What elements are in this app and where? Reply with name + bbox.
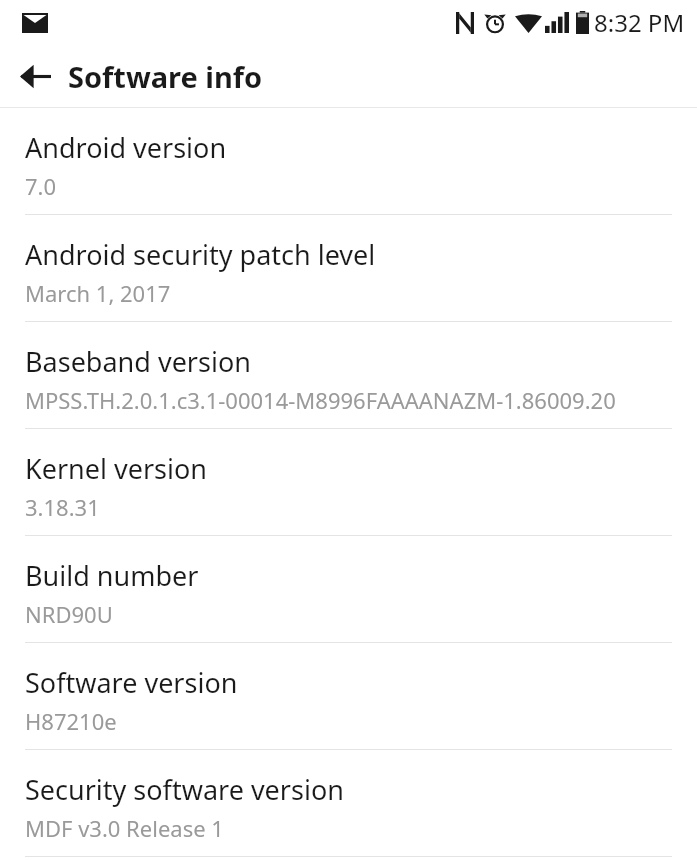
staticText: MPSS.TH.2.0.1.c3.1-00014-M8996FAAAANAZM-… [25,385,616,415]
staticText: NRD90U [25,599,113,629]
staticText: March 1, 2017 [25,278,171,308]
staticText: Android version [25,129,227,166]
staticText: H87210e [25,706,117,736]
staticText: Baseband version [25,343,251,380]
staticText: Software info [68,57,263,96]
button[interactable]: Back [10,51,60,101]
button[interactable]: Android version [0,108,697,215]
button[interactable]: Kernel version [0,429,697,536]
staticText: MDF v3.0 Release 1 [25,813,224,843]
staticText: 3.18.31 [25,492,100,522]
staticText: 8:32 PM [594,6,685,39]
staticText: Software version [25,664,238,701]
button[interactable]: Security software version [0,750,697,857]
button[interactable]: Baseband version [0,322,697,429]
staticText: Kernel version [25,450,208,487]
staticText: Security software version [25,771,344,808]
button[interactable]: Android security patch level [0,215,697,322]
staticText: Build number [25,557,199,594]
staticText: Android security patch level [25,236,376,273]
staticText: 7.0 [25,171,57,201]
button[interactable]: Build number [0,536,697,643]
button[interactable]: Software version [0,643,697,750]
